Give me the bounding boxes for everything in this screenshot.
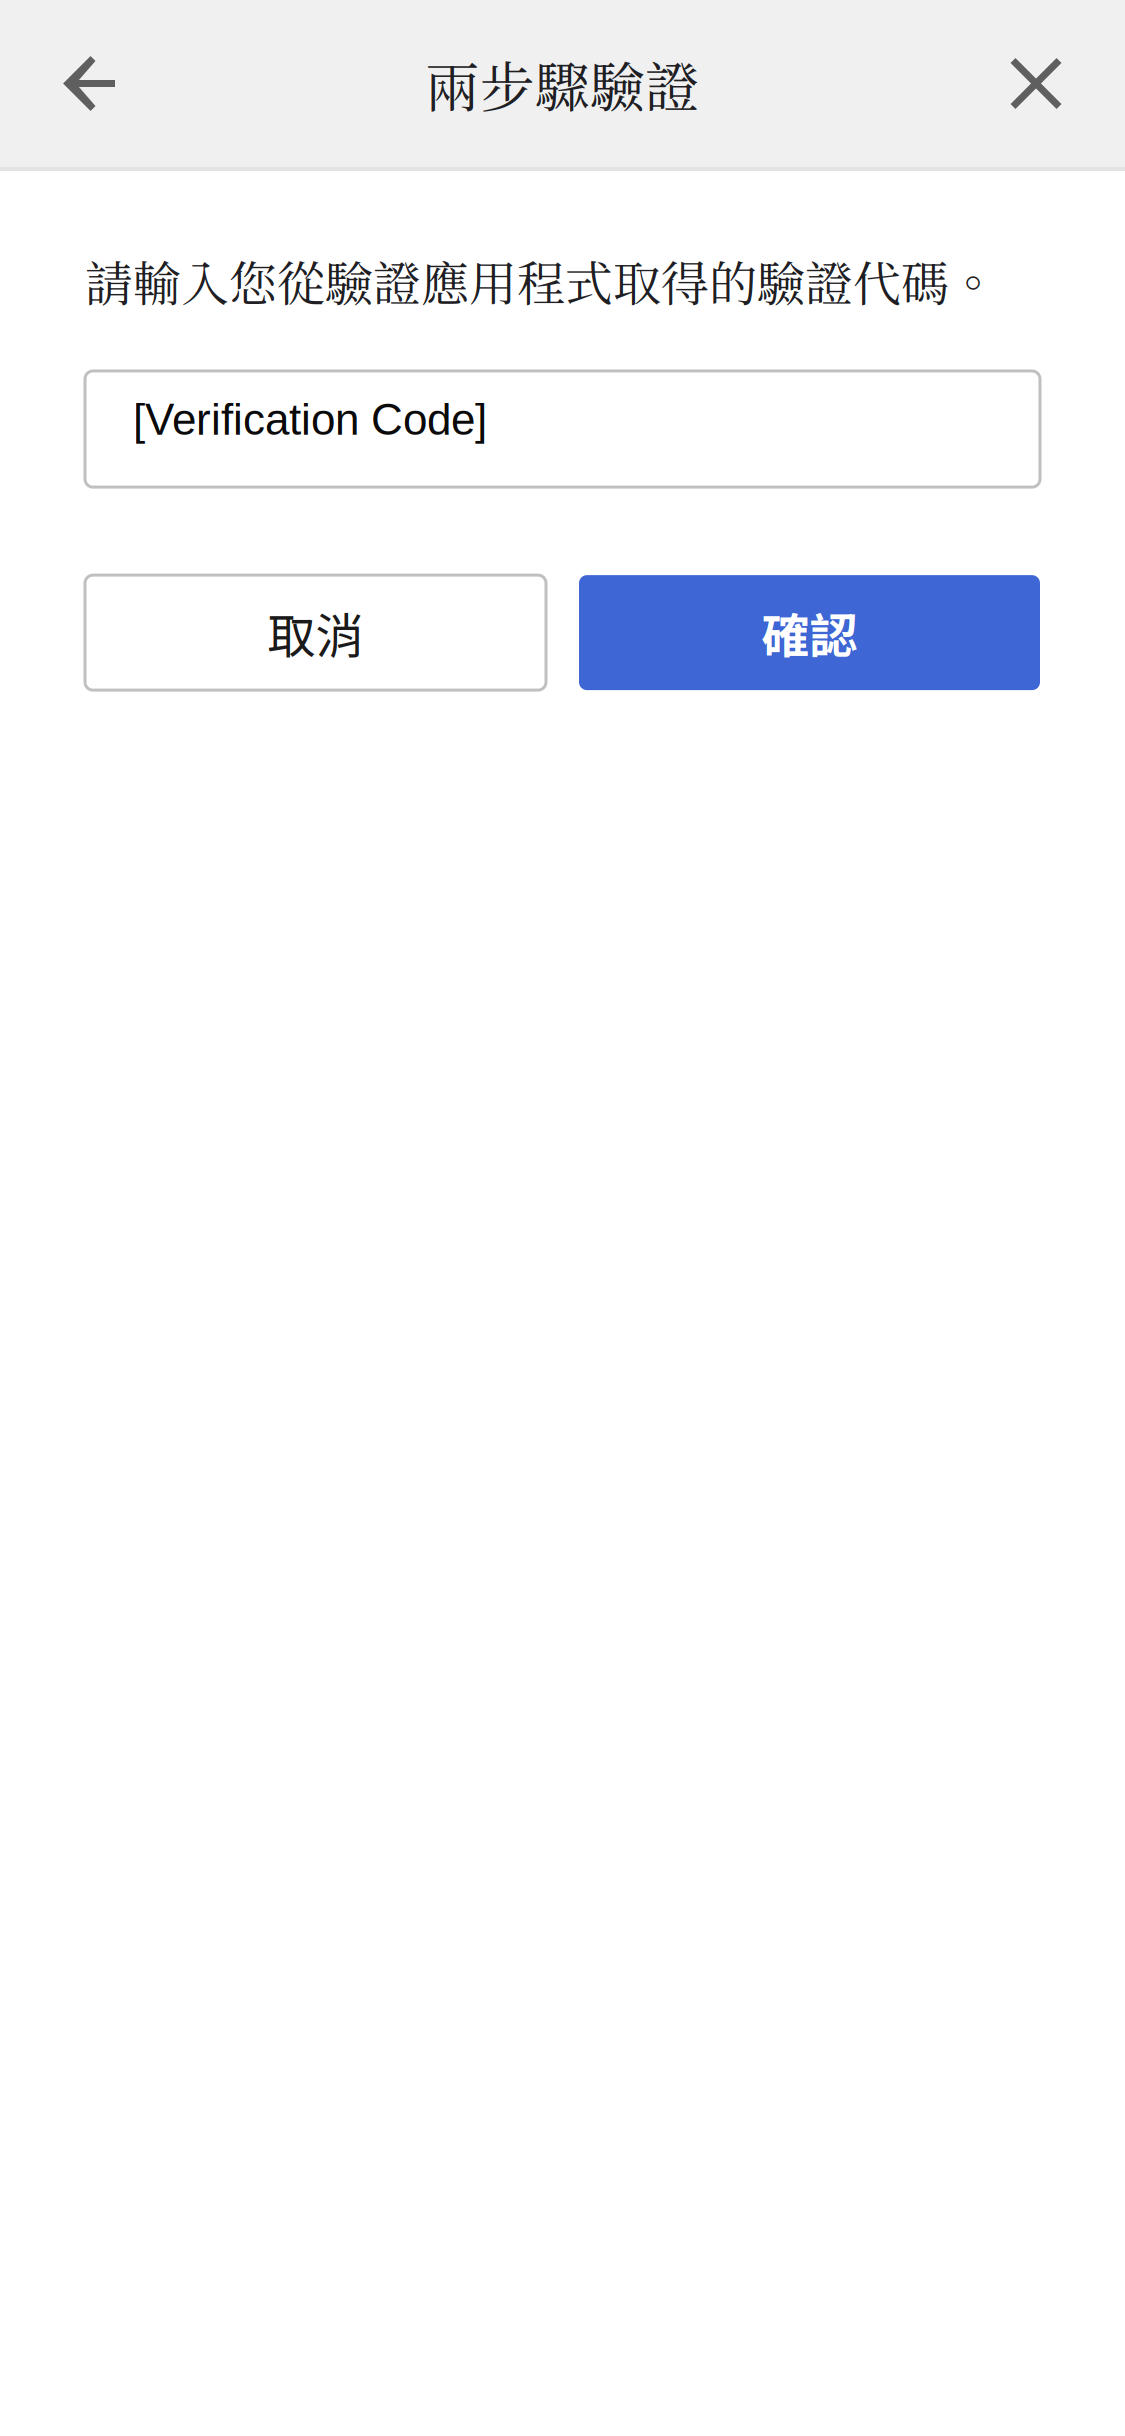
staticText: 請輸入您從驗證應用程式取得的驗證代碼。: [85, 246, 997, 315]
button[interactable]: 驗證代碼: [85, 371, 1040, 487]
button[interactable]: 關閉: [979, 0, 1125, 167]
staticText: 兩步驟驗證: [425, 44, 700, 123]
staticText: [Verification Code]: [133, 395, 487, 444]
button[interactable]: 返回: [0, 0, 146, 167]
staticText: 確認: [761, 598, 857, 667]
staticText: 取消: [267, 598, 363, 667]
button[interactable]: 確認: [579, 575, 1040, 690]
button[interactable]: 取消: [85, 575, 546, 690]
